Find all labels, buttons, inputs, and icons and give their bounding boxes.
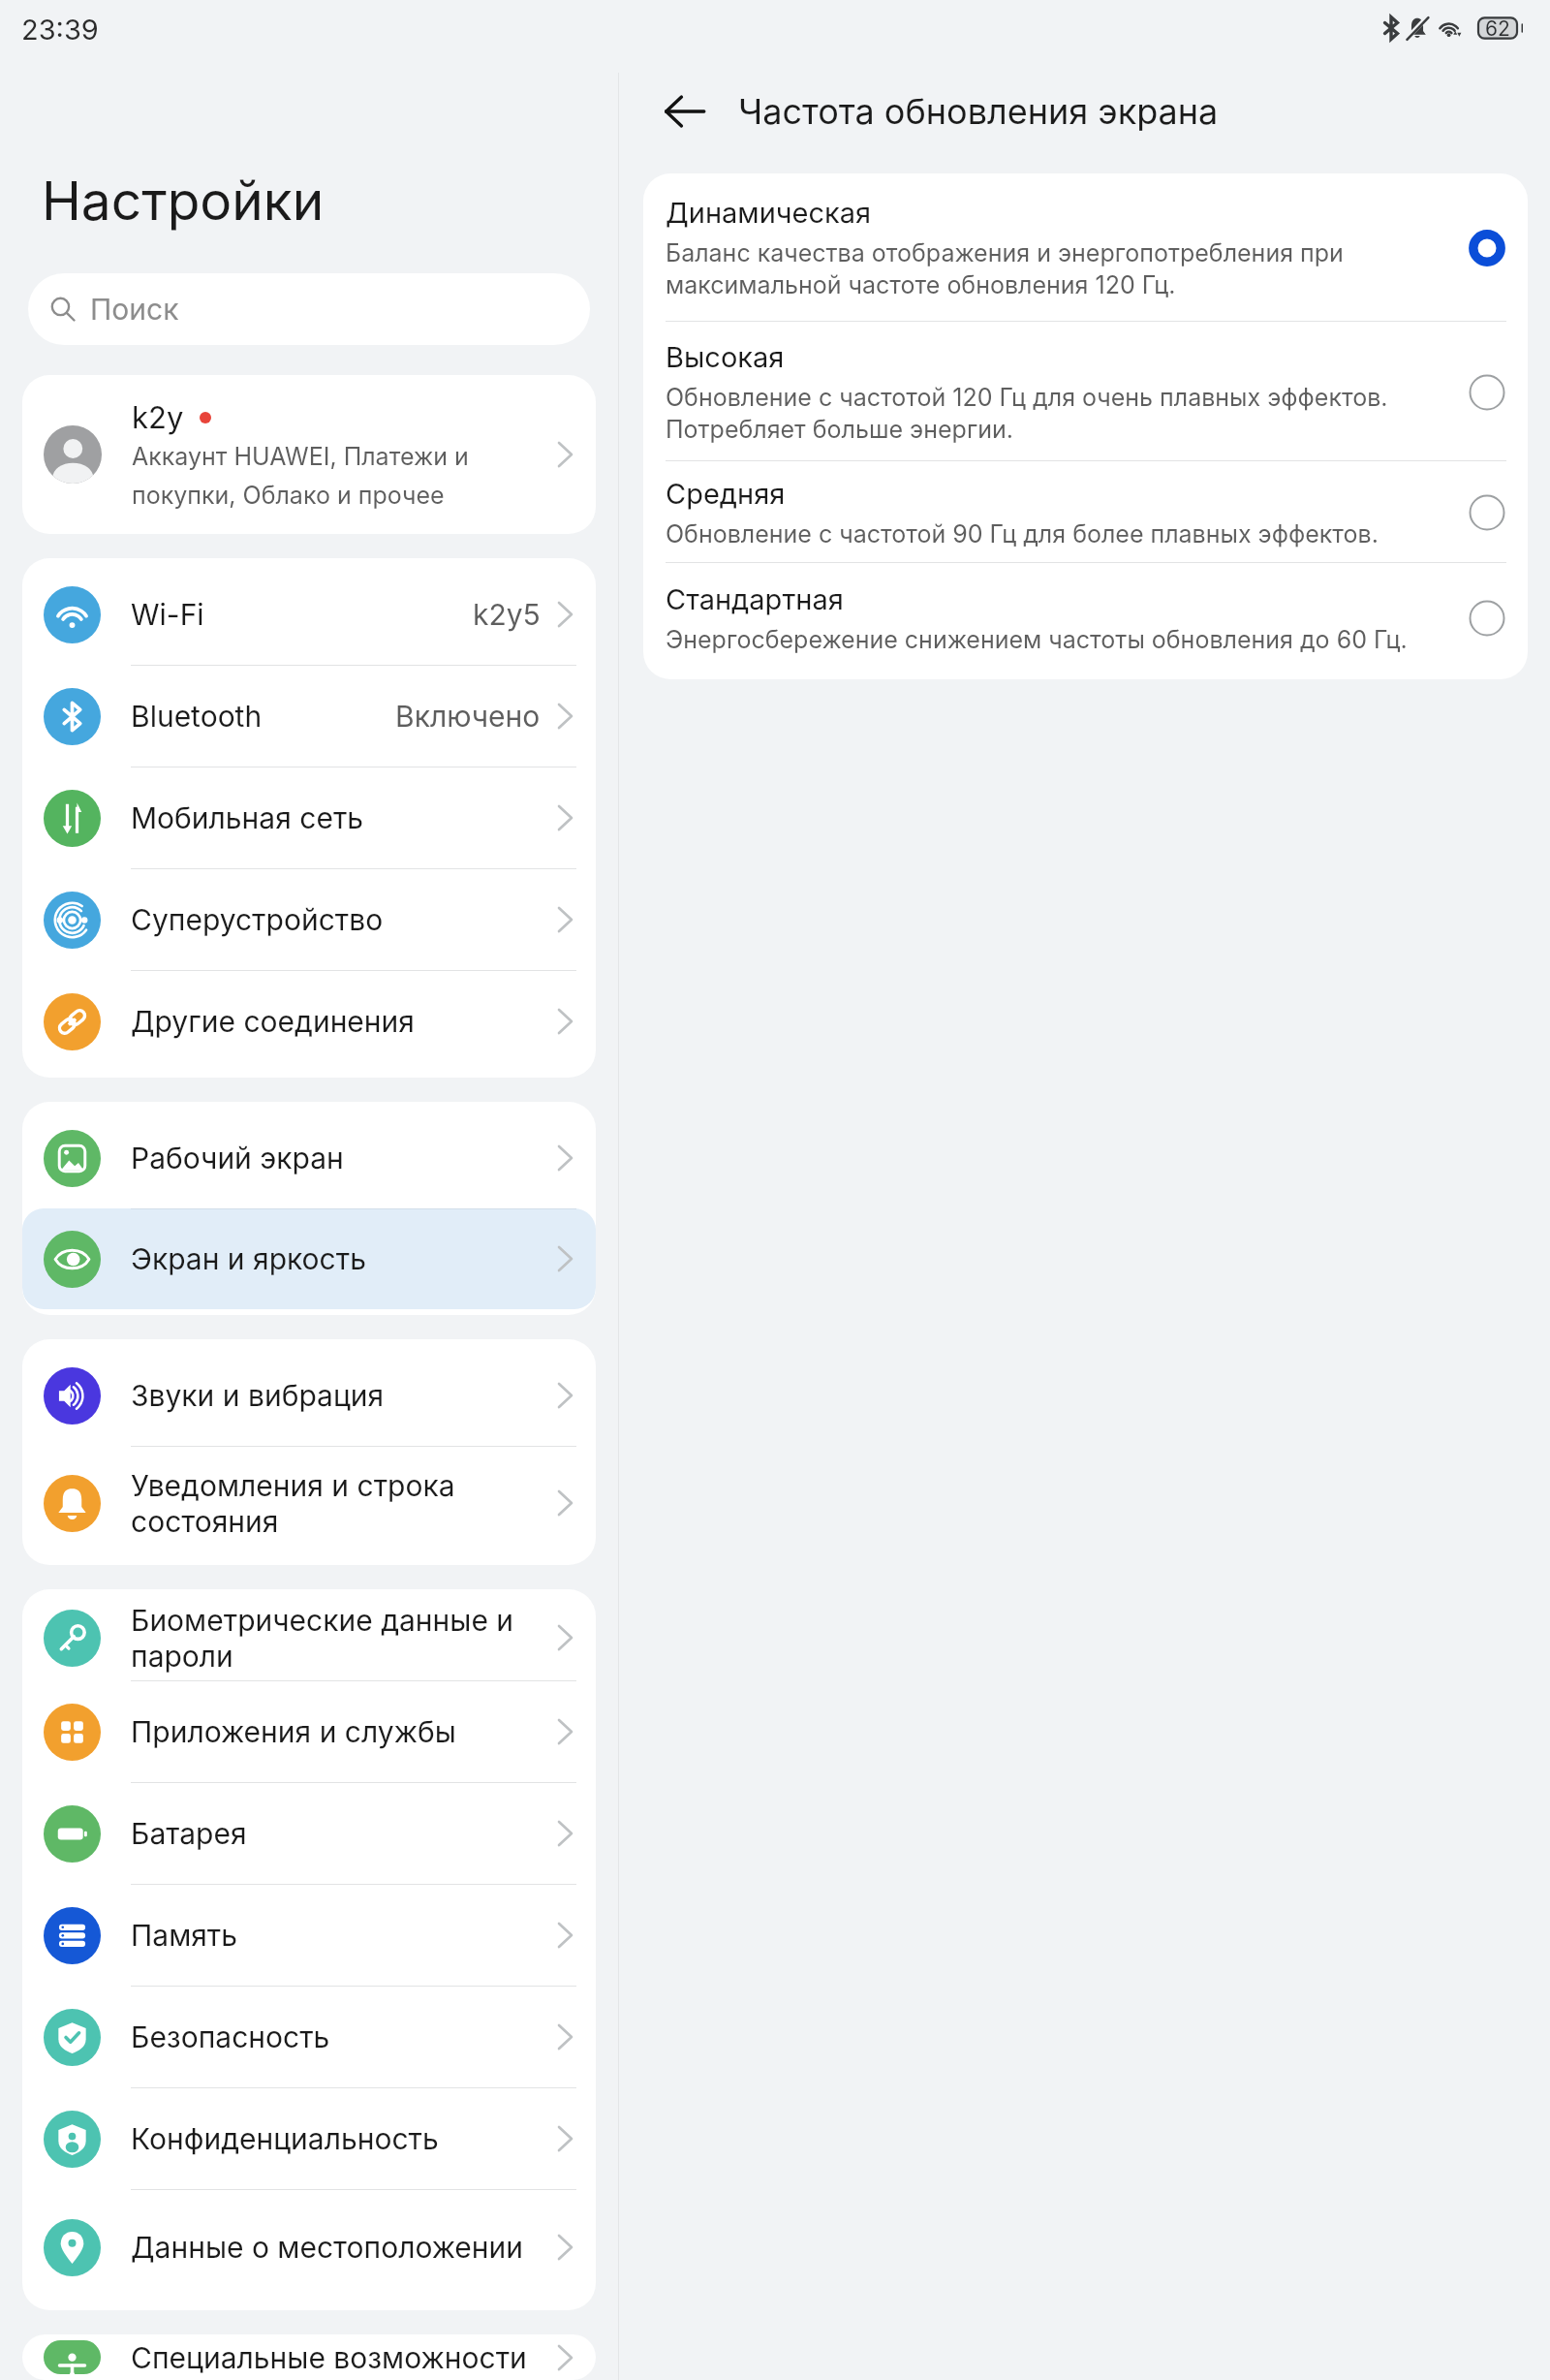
staticText: Конфиденциальность bbox=[131, 2121, 550, 2156]
staticText: Приложения и службы bbox=[131, 1714, 550, 1749]
staticText: Баланс качества отображения и энергопотр… bbox=[666, 238, 1344, 299]
staticText: Средняя bbox=[666, 477, 786, 511]
staticText: Динамическая bbox=[666, 196, 872, 230]
button[interactable]: Конфиденциальность bbox=[22, 2088, 596, 2189]
staticText: 23:39 bbox=[21, 13, 99, 47]
staticText: Включено bbox=[395, 699, 541, 734]
staticText: Обновление с частотой 120 Гц для очень п… bbox=[666, 383, 1388, 444]
staticText: Уведомления и строка состояния bbox=[131, 1468, 550, 1539]
staticText: Экран и яркость bbox=[131, 1241, 550, 1276]
staticText: Энергосбережение снижением частоты обнов… bbox=[666, 625, 1408, 654]
button[interactable]: Специальные возможности bbox=[22, 2340, 596, 2374]
button[interactable]: Батарея bbox=[22, 1783, 596, 1884]
staticText: Настройки bbox=[42, 169, 325, 234]
button[interactable]: Экран и яркость bbox=[22, 1208, 596, 1309]
staticText: Звуки и вибрация bbox=[131, 1378, 550, 1413]
staticText: Память bbox=[131, 1918, 550, 1953]
button[interactable]: Звуки и вибрация bbox=[22, 1345, 596, 1446]
staticText: Батарея bbox=[131, 1816, 550, 1851]
button[interactable]: Биометрические данные и пароли bbox=[22, 1595, 596, 1680]
button[interactable]: Память bbox=[22, 1885, 596, 1986]
staticText: Другие соединения bbox=[131, 1004, 550, 1039]
staticText: Специальные возможности bbox=[131, 2340, 550, 2374]
staticText: Обновление с частотой 90 Гц для более пл… bbox=[666, 519, 1379, 548]
button[interactable]: Wi-Fi bbox=[22, 564, 596, 665]
button[interactable]: Средняя bbox=[643, 461, 1528, 562]
staticText: Стандартная bbox=[666, 582, 844, 616]
button[interactable]: Суперустройство bbox=[22, 869, 596, 970]
button[interactable]: Динамическая bbox=[643, 173, 1528, 321]
staticText: Безопасность bbox=[131, 2020, 550, 2054]
button[interactable]: Bluetooth bbox=[22, 666, 596, 767]
button[interactable]: Приложения и службы bbox=[22, 1681, 596, 1782]
staticText: k2y bbox=[132, 399, 184, 436]
button[interactable]: Высокая bbox=[643, 322, 1528, 460]
staticText: Высокая bbox=[666, 340, 785, 374]
staticText: Данные о местоположении bbox=[131, 2230, 550, 2265]
button[interactable]: Стандартная bbox=[643, 563, 1528, 679]
staticText: Рабочий экран bbox=[131, 1141, 550, 1175]
button[interactable]: Безопасность bbox=[22, 1987, 596, 2087]
button[interactable]: Назад bbox=[648, 75, 722, 148]
button[interactable]: Уведомления и строка состояния bbox=[22, 1447, 596, 1559]
staticText: Bluetooth bbox=[131, 699, 395, 734]
button[interactable]: Рабочий экран bbox=[22, 1108, 596, 1208]
button[interactable]: k2y bbox=[22, 375, 596, 534]
button[interactable]: Поиск bbox=[28, 273, 590, 345]
staticText: Биометрические данные и пароли bbox=[131, 1603, 550, 1674]
staticText: Поиск bbox=[90, 292, 179, 327]
staticText: 62 bbox=[1485, 16, 1510, 41]
staticText: Суперустройство bbox=[131, 902, 550, 937]
button[interactable]: Данные о местоположении bbox=[22, 2190, 596, 2304]
staticText: k2y5 bbox=[473, 597, 541, 632]
staticText: Мобильная сеть bbox=[131, 800, 550, 835]
staticText: Аккаунт HUAWEI, Платежи и покупки, Облак… bbox=[132, 442, 539, 510]
button[interactable]: Мобильная сеть bbox=[22, 767, 596, 868]
staticText: Частота обновления экрана bbox=[738, 90, 1219, 133]
staticText: Wi-Fi bbox=[131, 597, 473, 632]
button[interactable]: Другие соединения bbox=[22, 971, 596, 1072]
